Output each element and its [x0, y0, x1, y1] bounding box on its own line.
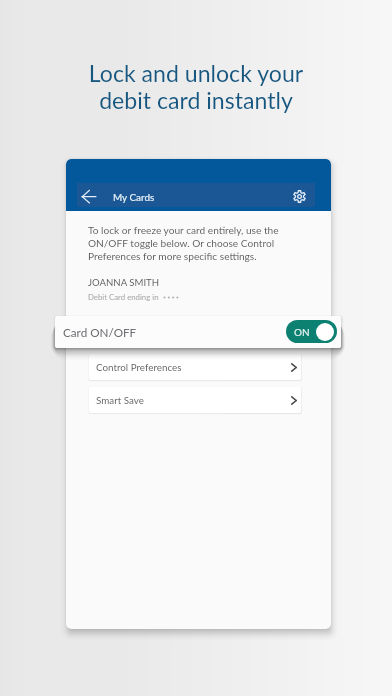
- button[interactable]: Smart Save: [89, 387, 301, 413]
- staticText: JOANNA SMITH: [88, 277, 160, 289]
- staticText: Smart Save: [96, 394, 144, 406]
- staticText: Debit Card ending in: [88, 292, 159, 301]
- button[interactable]: Control Preferences: [89, 354, 301, 380]
- button[interactable]: Settings: [288, 185, 310, 208]
- staticText: Control Preferences: [96, 361, 182, 373]
- staticText: Lock and unlock your debit card instantl…: [0, 59, 392, 114]
- button[interactable]: Card ON/OFF: [55, 316, 341, 348]
- staticText: ON: [294, 326, 310, 338]
- staticText: Card ON/OFF: [63, 325, 137, 339]
- staticText: To lock or freeze your card entirely, us…: [88, 224, 279, 262]
- button[interactable]: Back: [76, 186, 98, 207]
- staticText: My Cards: [113, 191, 155, 203]
